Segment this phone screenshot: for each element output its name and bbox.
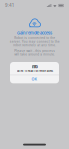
staticText: OK xyxy=(31,77,37,81)
staticText: Info xyxy=(31,65,37,69)
staticText: Gain remote access xyxy=(17,31,52,35)
staticText: Please wait - this process will take aro… xyxy=(14,49,55,56)
button[interactable]: OK xyxy=(10,75,59,83)
staticText: Robot is connected to the server. You ma… xyxy=(9,36,59,47)
staticText: 9:41 xyxy=(5,3,14,8)
staticText: Failed to establish remote access xyxy=(16,70,52,73)
